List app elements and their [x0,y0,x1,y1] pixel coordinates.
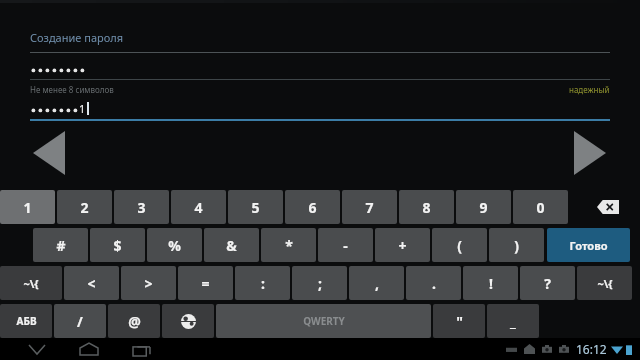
button[interactable]: Change language [162,304,214,338]
button[interactable]: ? [520,266,575,300]
button[interactable]: Hide keyboard [22,339,52,359]
staticText: " [456,312,463,331]
button[interactable]: : [235,266,290,300]
button[interactable]: ~\{ [577,266,632,300]
staticText: ~\{ [23,276,39,291]
button[interactable]: 4 [171,190,226,224]
button[interactable]: Backspace [577,190,639,224]
button[interactable]: 5 [228,190,283,224]
button[interactable]: 8 [399,190,454,224]
staticText: < [87,274,96,293]
button[interactable]: % [147,228,202,262]
staticText: 9 [479,198,488,217]
button[interactable]: + [375,228,430,262]
staticText: ? [544,274,551,293]
button[interactable]: ) [489,228,544,262]
button[interactable]: , [349,266,404,300]
staticText: , [375,274,379,293]
button[interactable]: Готово [547,228,630,262]
staticText: ! [489,274,493,293]
staticText: ( [457,236,462,255]
button[interactable]: QWERTY [216,304,431,338]
button[interactable]: @ [108,304,160,338]
staticText: : [261,274,265,293]
staticText: # [56,236,66,255]
staticText: 4 [194,198,203,217]
staticText: % [168,236,181,255]
staticText: @ [128,312,141,331]
staticText: $ [113,236,122,255]
staticText: _ [510,312,516,331]
button[interactable]: 0 [513,190,568,224]
staticText: Не менее 8 символов [30,84,114,95]
staticText: АБВ [16,314,37,328]
staticText: ~\{ [597,276,613,291]
button[interactable]: " [433,304,485,338]
staticText: 2 [80,198,89,217]
button[interactable]: ; [292,266,347,300]
button[interactable]: > [121,266,176,300]
button[interactable]: & [204,228,259,262]
staticText: = [201,274,210,293]
staticText: ) [514,236,519,255]
staticText: 5 [251,198,260,217]
staticText: > [144,274,153,293]
staticText: 1 [23,198,32,217]
staticText: . [432,274,436,293]
button[interactable]: 7 [342,190,397,224]
staticText: 8 [422,198,431,217]
staticText: 1 [79,101,86,116]
staticText: 16:12 [576,341,607,357]
staticText: ; [318,274,322,293]
button[interactable]: Home [74,339,104,359]
button[interactable]: 3 [114,190,169,224]
staticText: 6 [308,198,317,217]
staticText: + [398,236,407,255]
button[interactable]: $ [90,228,145,262]
button[interactable]: # [33,228,88,262]
button[interactable] [30,63,610,80]
button[interactable]: Back [33,131,65,175]
staticText: 3 [137,198,146,217]
staticText: 0 [536,198,545,217]
button[interactable]: < [64,266,119,300]
button[interactable]: . [406,266,461,300]
button[interactable]: ~\{ [0,266,62,300]
button[interactable]: ! [463,266,518,300]
staticText: Готово [569,238,608,253]
button[interactable]: 1 [0,190,55,224]
button[interactable]: / [54,304,106,338]
staticText: надежный [569,84,610,95]
button[interactable]: _ [487,304,539,338]
button[interactable]: 9 [456,190,511,224]
button[interactable]: Next [574,131,606,175]
button[interactable]: ( [432,228,487,262]
button[interactable]: - [318,228,373,262]
button[interactable]: 1 [30,101,610,121]
button[interactable]: = [178,266,233,300]
button[interactable]: АБВ [0,304,52,338]
staticText: 7 [365,198,374,217]
button[interactable]: 2 [57,190,112,224]
staticText: & [226,236,237,255]
button[interactable]: * [261,228,316,262]
button[interactable]: Recent apps [126,339,156,359]
staticText: - [343,236,348,255]
staticText: / [77,312,83,331]
staticText: * [285,236,293,255]
staticText: QWERTY [303,314,345,328]
button[interactable]: Создание пароля [30,30,124,45]
button[interactable]: 6 [285,190,340,224]
